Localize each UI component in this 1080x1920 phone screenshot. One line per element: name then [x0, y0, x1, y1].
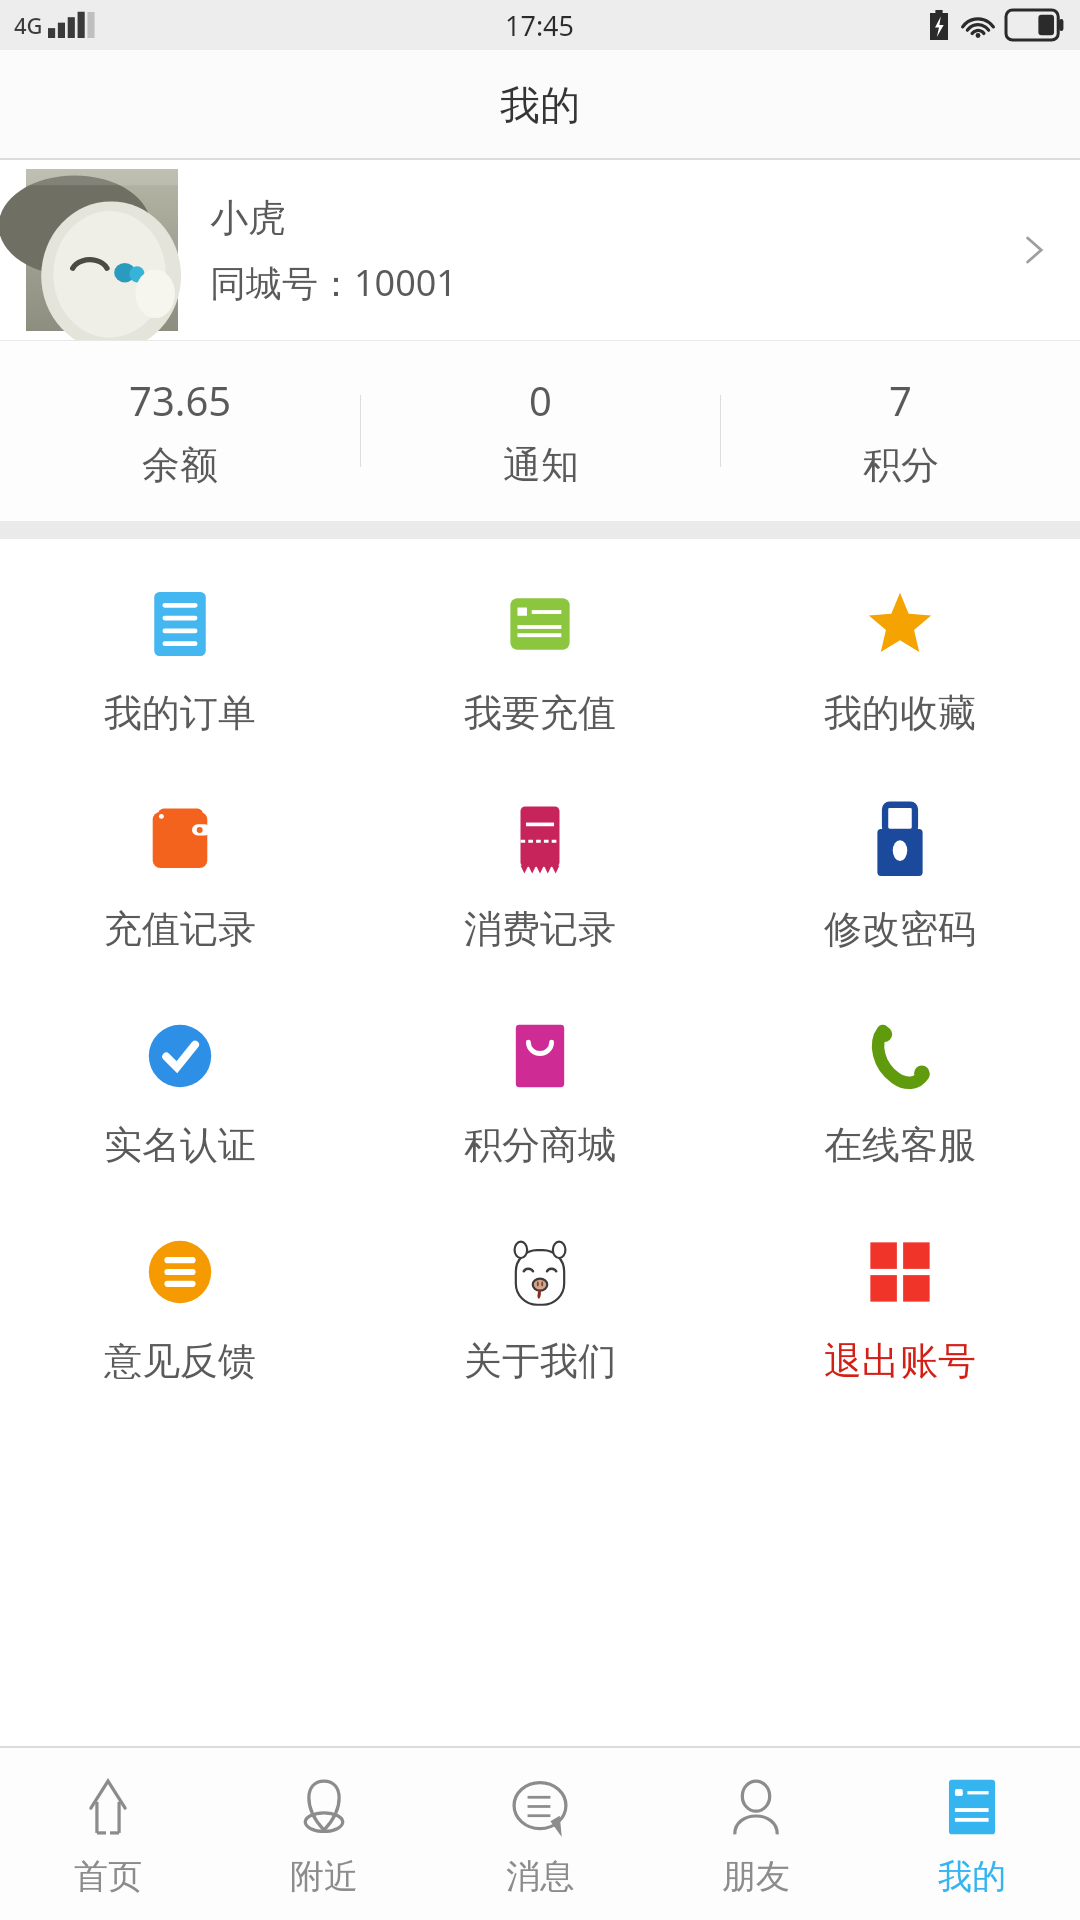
staticText: 通知 — [503, 441, 579, 489]
button[interactable]: 实名认证 — [0, 1011, 360, 1175]
staticText: 我要充值 — [464, 689, 616, 737]
button[interactable]: 关于我们 — [360, 1227, 720, 1391]
button[interactable]: 73.65 — [0, 359, 360, 503]
button[interactable]: 7 — [721, 359, 1080, 503]
staticText: 73.65 — [129, 373, 232, 427]
other: Profile details — [1014, 230, 1054, 270]
button[interactable]: 修改密码 — [720, 795, 1080, 959]
staticText: 消息 — [506, 1855, 574, 1898]
staticText: 我的收藏 — [824, 689, 976, 737]
staticText: 4G — [14, 10, 43, 40]
staticText: 关于我们 — [464, 1337, 616, 1385]
button[interactable]: 我的订单 — [0, 579, 360, 743]
staticText: 首页 — [74, 1855, 142, 1898]
staticText: 我的订单 — [104, 689, 256, 737]
button[interactable]: 附近 — [216, 1763, 432, 1906]
button[interactable]: 退出账号 — [720, 1227, 1080, 1391]
staticText: 修改密码 — [824, 905, 976, 953]
staticText: 消费记录 — [464, 905, 616, 953]
button[interactable]: 消费记录 — [360, 795, 720, 959]
button[interactable]: 首页 — [0, 1763, 216, 1906]
button[interactable]: 朋友 — [648, 1763, 864, 1906]
staticText: 余额 — [142, 441, 218, 489]
staticText: 同城号：10001 — [210, 258, 457, 307]
button[interactable]: 消息 — [432, 1763, 648, 1906]
button[interactable]: 意见反馈 — [0, 1227, 360, 1391]
staticText: 7 — [889, 373, 912, 427]
button[interactable]: 我的 — [864, 1763, 1080, 1906]
staticText: 充值记录 — [104, 905, 256, 953]
staticText: 意见反馈 — [104, 1337, 256, 1385]
button[interactable]: 我要充值 — [360, 579, 720, 743]
button[interactable]: 充值记录 — [0, 795, 360, 959]
staticText: 小虎 — [210, 194, 286, 242]
staticText: 积分 — [863, 441, 939, 489]
staticText: 积分商城 — [464, 1121, 616, 1169]
staticText: 朋友 — [722, 1855, 790, 1898]
staticText: 17:45 — [505, 7, 575, 44]
staticText: 0 — [529, 373, 552, 427]
button[interactable]: 积分商城 — [360, 1011, 720, 1175]
staticText: 我的 — [938, 1855, 1006, 1898]
button[interactable]: 在线客服 — [720, 1011, 1080, 1175]
staticText: 附近 — [290, 1855, 358, 1898]
staticText: 退出账号 — [824, 1337, 976, 1385]
staticText: 实名认证 — [104, 1121, 256, 1169]
button[interactable]: 小虎 — [0, 160, 1080, 340]
button[interactable]: 我的收藏 — [720, 579, 1080, 743]
staticText: 我的 — [500, 80, 580, 130]
staticText: 在线客服 — [824, 1121, 976, 1169]
button[interactable]: 0 — [361, 359, 720, 503]
